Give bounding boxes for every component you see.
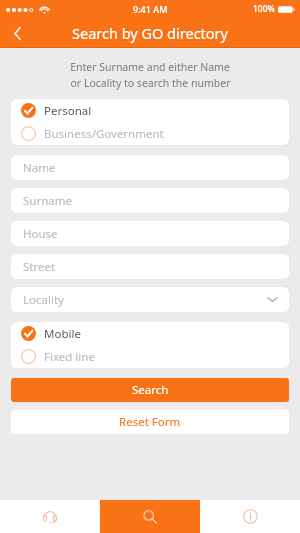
staticText: Reset Form bbox=[119, 414, 181, 430]
button[interactable]: House bbox=[11, 221, 289, 246]
staticText: Locality bbox=[23, 292, 64, 308]
button[interactable]: Street bbox=[11, 254, 289, 279]
button[interactable]: Search bbox=[11, 378, 289, 402]
staticText: Street bbox=[23, 259, 56, 275]
staticText: Search bbox=[132, 382, 169, 398]
staticText: Surname bbox=[23, 193, 72, 209]
button[interactable]: Information bbox=[200, 500, 300, 533]
staticText: House bbox=[23, 226, 58, 242]
button[interactable]: Reset Form bbox=[11, 410, 289, 434]
button[interactable]: Search bbox=[100, 500, 200, 533]
button[interactable]: Business/Government bbox=[11, 122, 289, 145]
staticText: Search by GO directory bbox=[72, 23, 228, 43]
button[interactable]: Fixed line bbox=[11, 345, 289, 368]
button[interactable]: Mobile bbox=[11, 322, 289, 345]
staticText: or Locality to search the number bbox=[70, 76, 231, 90]
staticText: 9:41 AM bbox=[133, 3, 168, 15]
staticText: Business/Government bbox=[44, 126, 164, 142]
button[interactable]: Locality bbox=[11, 287, 289, 312]
staticText: Mobile bbox=[44, 326, 81, 342]
button[interactable]: Personal bbox=[11, 99, 289, 122]
staticText: Fixed line bbox=[44, 349, 95, 365]
button[interactable]: Support bbox=[0, 500, 100, 533]
staticText: Personal bbox=[44, 103, 92, 119]
button[interactable]: Surname bbox=[11, 188, 289, 213]
button[interactable]: Name bbox=[11, 155, 289, 180]
button[interactable]: Back bbox=[0, 18, 34, 48]
staticText: 100% bbox=[253, 3, 275, 15]
staticText: Name bbox=[23, 160, 56, 176]
staticText: Enter Surname and either Name bbox=[70, 60, 230, 74]
